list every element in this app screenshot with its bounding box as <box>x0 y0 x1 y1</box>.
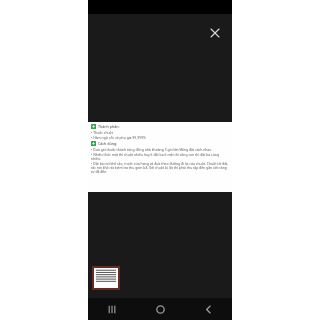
button[interactable]: Close <box>206 24 224 42</box>
staticText: Thành phần: <box>98 124 120 129</box>
button[interactable]: Home <box>136 298 184 320</box>
staticText: • Đặt ba nơi khô ráo, trước cửa hang và … <box>91 161 229 174</box>
staticText: • Thuốc chuột <box>91 130 229 135</box>
button[interactable]: Recents <box>88 298 136 320</box>
staticText: Cách dùng: <box>98 141 118 146</box>
button[interactable]: Back <box>184 298 232 320</box>
staticText: • Hàm ngũ cốc và phụ gia 99,999% <box>91 135 229 140</box>
staticText: • Nhiều thức mặt thì chuột nhiều hay ít … <box>91 152 229 161</box>
staticText: • Đưa gói thuốc thành từng đống nhỏ khoả… <box>91 147 229 152</box>
button[interactable]: Thumbnail preview <box>94 268 118 288</box>
